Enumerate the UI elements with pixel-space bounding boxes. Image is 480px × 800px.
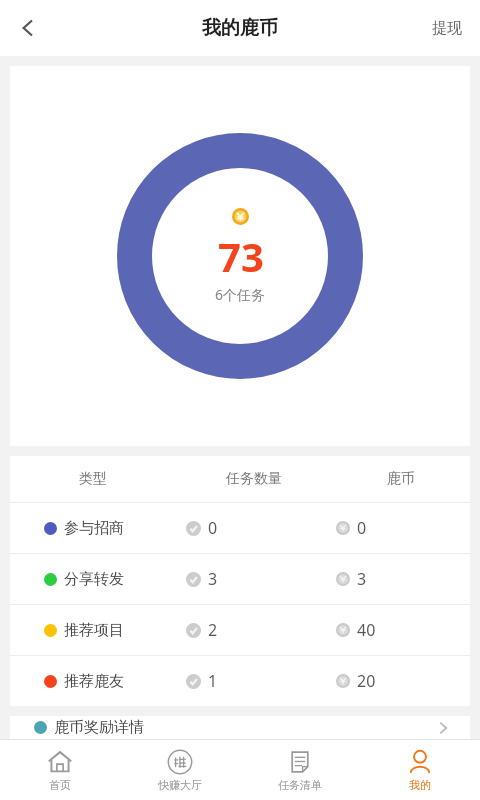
- button[interactable]: 推荐鹿友: [10, 656, 470, 706]
- staticText: 2: [208, 619, 218, 641]
- staticText: 任务清单: [278, 778, 322, 792]
- staticText: 鹿币奖励详情: [54, 718, 144, 737]
- button[interactable]: 任务清单: [240, 740, 360, 800]
- staticText: 0: [357, 517, 367, 539]
- staticText: 3: [357, 568, 367, 590]
- staticText: 我的鹿币: [202, 16, 278, 40]
- staticText: 0: [208, 517, 218, 539]
- staticText: 参与招商: [64, 519, 124, 538]
- staticText: 快赚大厅: [158, 778, 202, 792]
- button[interactable]: 提现: [414, 0, 480, 56]
- button[interactable]: 首页: [0, 740, 120, 800]
- button[interactable]: 鹿币奖励详情: [10, 716, 470, 739]
- staticText: 6个任务: [215, 285, 266, 304]
- staticText: 推荐鹿友: [64, 672, 124, 691]
- staticText: 20: [357, 670, 376, 692]
- staticText: 3: [208, 568, 218, 590]
- staticText: 我的: [409, 778, 431, 792]
- button[interactable]: 推荐项目: [10, 605, 470, 655]
- staticText: 鹿币: [387, 470, 415, 488]
- staticText: 提现: [432, 19, 462, 38]
- button[interactable]: Back: [0, 0, 56, 56]
- staticText: 40: [357, 619, 376, 641]
- staticText: 任务数量: [226, 470, 282, 488]
- staticText: 73: [218, 229, 264, 283]
- staticText: 类型: [79, 470, 107, 488]
- button[interactable]: 我的: [360, 740, 480, 800]
- staticText: 分享转发: [64, 570, 124, 589]
- button[interactable]: 参与招商: [10, 503, 470, 553]
- button[interactable]: 分享转发: [10, 554, 470, 604]
- button[interactable]: 快赚大厅: [120, 740, 240, 800]
- staticText: 首页: [49, 778, 71, 792]
- staticText: 推荐项目: [64, 621, 124, 640]
- staticText: 1: [208, 670, 218, 692]
